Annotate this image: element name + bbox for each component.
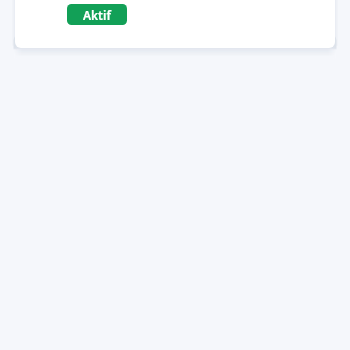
button[interactable]: Aktif <box>67 4 127 25</box>
staticText: Aktif <box>83 7 111 23</box>
button[interactable]: Abonelik <box>15 0 335 48</box>
other: Card elevation shadow <box>0 0 350 350</box>
